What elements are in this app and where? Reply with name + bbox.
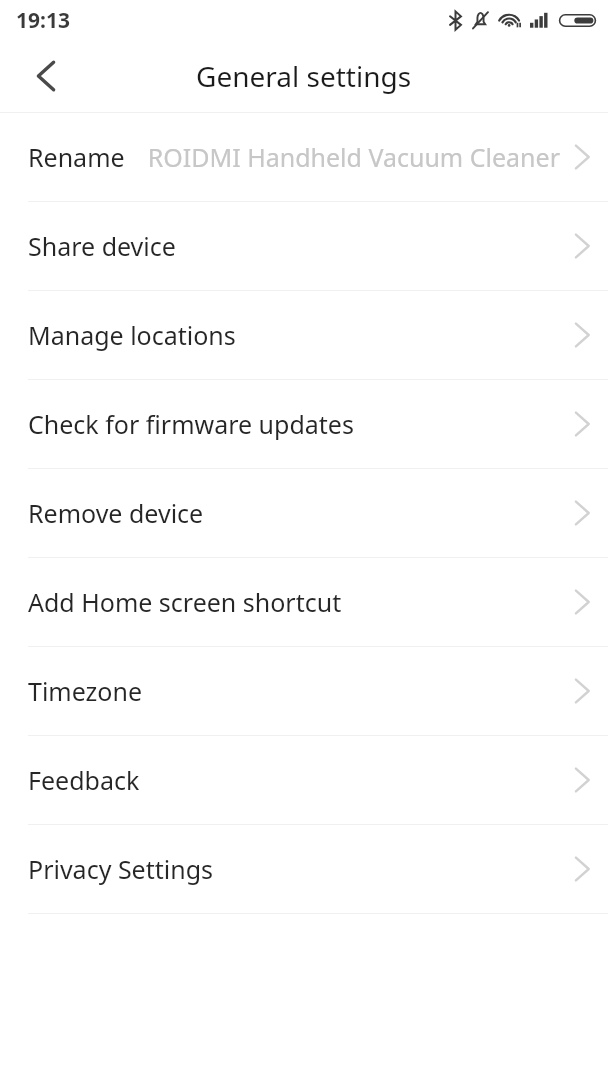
button[interactable]: Add Home screen shortcut <box>0 558 608 646</box>
button[interactable]: Share device <box>0 202 608 290</box>
button[interactable]: Feedback <box>0 736 608 824</box>
staticText: Privacy Settings <box>28 852 214 886</box>
staticText: Add Home screen shortcut <box>28 585 342 619</box>
staticText: Timezone <box>28 674 143 708</box>
button[interactable]: Back <box>20 50 72 102</box>
staticText: Check for firmware updates <box>28 407 354 441</box>
staticText: General settings <box>196 57 412 95</box>
button[interactable]: Timezone <box>0 647 608 735</box>
button[interactable]: Manage locations <box>0 291 608 379</box>
button[interactable]: Rename <box>0 113 608 201</box>
button[interactable]: Check for firmware updates <box>0 380 608 468</box>
staticText: Rename <box>28 140 125 174</box>
staticText: Feedback <box>28 763 140 797</box>
staticText: Remove device <box>28 496 204 530</box>
staticText: 19:13 <box>16 6 70 35</box>
staticText: ROIDMI Handheld Vacuum Cleaner <box>147 140 560 174</box>
button[interactable]: Privacy Settings <box>0 825 608 913</box>
staticText: Manage locations <box>28 318 236 352</box>
button[interactable]: Remove device <box>0 469 608 557</box>
staticText: Share device <box>28 229 176 263</box>
